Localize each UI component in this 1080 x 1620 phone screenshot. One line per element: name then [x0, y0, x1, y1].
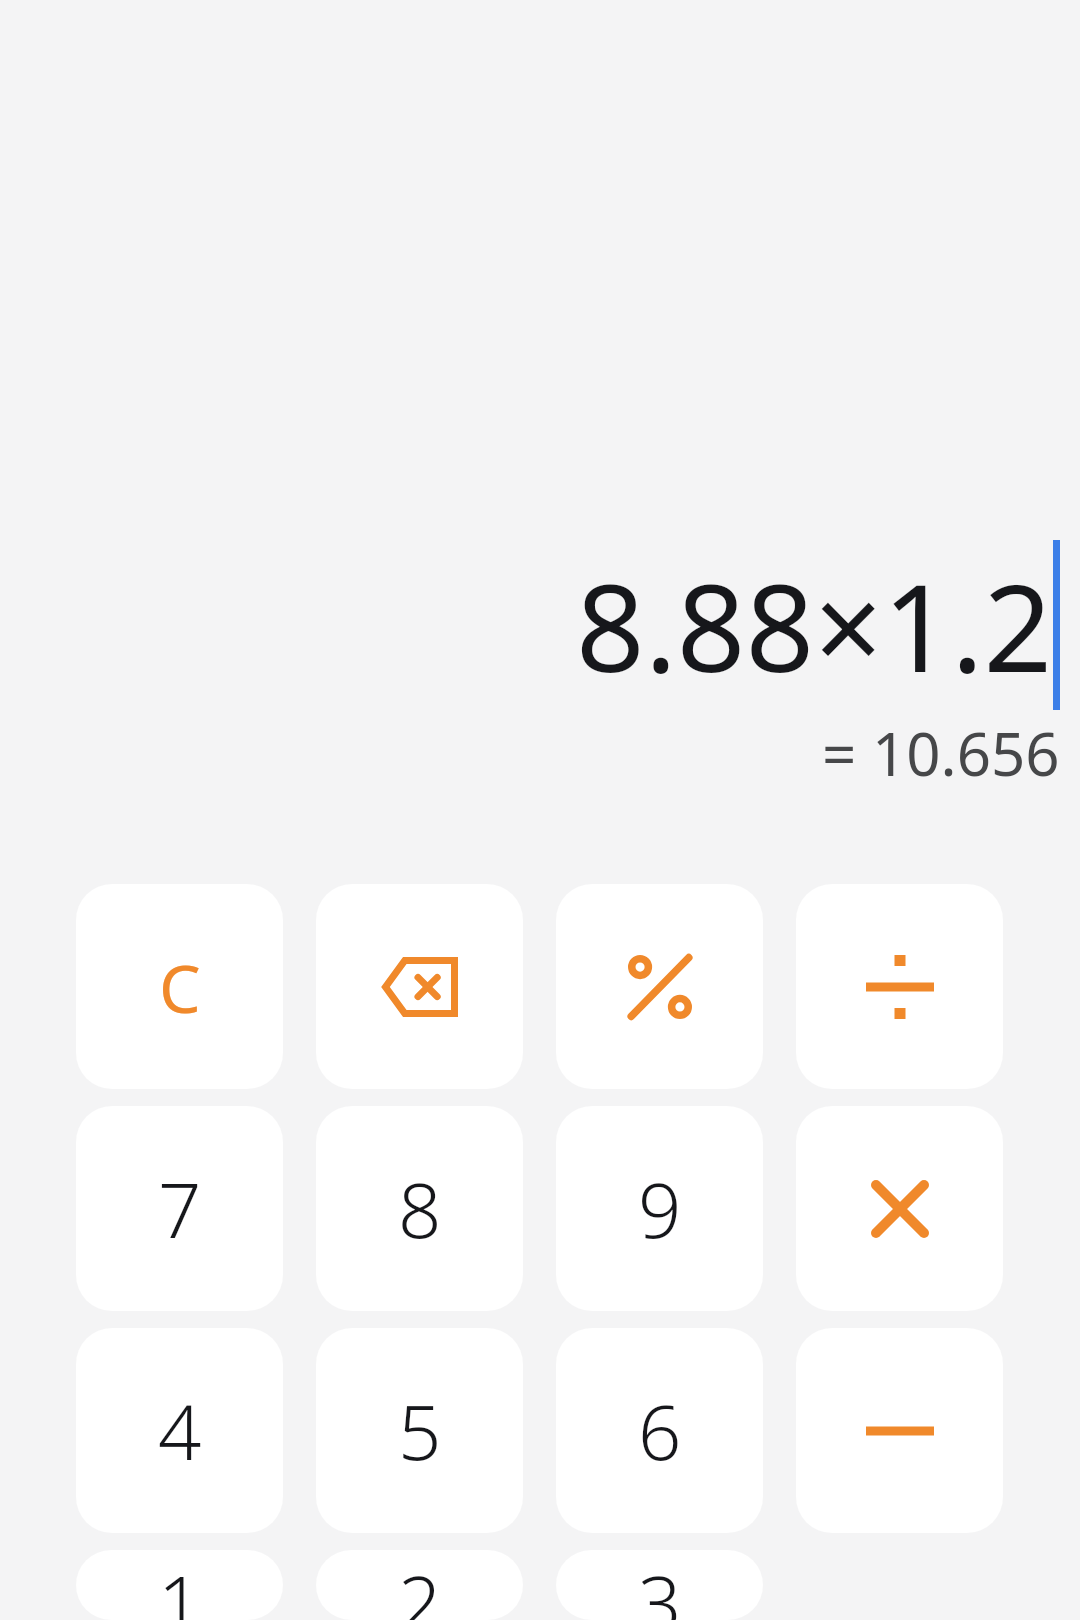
button[interactable]: 2 [316, 1550, 523, 1620]
staticText: 5 [398, 1379, 442, 1483]
button[interactable]: 1 [76, 1550, 283, 1620]
staticText: 2 [398, 1550, 442, 1620]
staticText: 3 [638, 1550, 682, 1620]
button[interactable]: 9 [556, 1106, 763, 1311]
staticText: 4 [158, 1379, 202, 1483]
button[interactable]: Percent [556, 884, 763, 1089]
button[interactable]: 6 [556, 1328, 763, 1533]
button[interactable]: 5 [316, 1328, 523, 1533]
button[interactable]: Minus [796, 1328, 1003, 1533]
staticText: C [159, 942, 201, 1032]
staticText: 8 [398, 1157, 442, 1261]
staticText: 7 [158, 1157, 202, 1261]
button[interactable]: 4 [76, 1328, 283, 1533]
button[interactable]: Clear [76, 884, 283, 1089]
button[interactable]: Divide [796, 884, 1003, 1089]
staticText: 8.88×1.2 [576, 544, 1053, 707]
button[interactable]: 8 [316, 1106, 523, 1311]
button[interactable]: Backspace [316, 884, 523, 1089]
button[interactable]: 7 [76, 1106, 283, 1311]
button[interactable]: 3 [556, 1550, 763, 1620]
button[interactable]: Multiply [796, 1106, 1003, 1311]
staticText: 9 [638, 1157, 682, 1261]
staticText: 6 [638, 1379, 682, 1483]
staticText: 1 [158, 1550, 202, 1620]
staticText: = 10.656 [822, 712, 1060, 794]
